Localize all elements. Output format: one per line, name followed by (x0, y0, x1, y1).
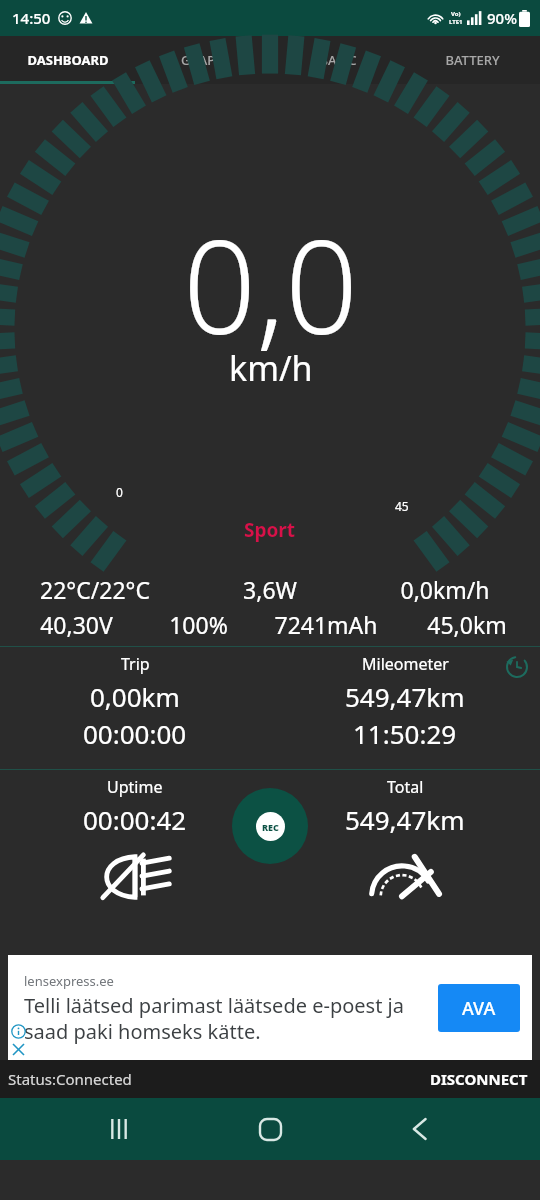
staticText: 45 (395, 498, 409, 514)
staticText: DASHBOARD (27, 51, 109, 69)
button[interactable]: Total (270, 770, 540, 945)
staticText: Vo) (451, 10, 461, 18)
staticText: 22°C/22°C (40, 574, 150, 605)
button[interactable]: Uptime (0, 770, 270, 945)
staticText: Trip (121, 653, 150, 675)
staticText: REC (262, 821, 279, 833)
staticText: 40,30V (40, 609, 113, 640)
staticText: 45,0km (427, 609, 507, 640)
staticText: 0,0km/h (400, 574, 490, 605)
button[interactable]: Trip (0, 647, 270, 769)
button[interactable]: Headlight off (96, 851, 174, 903)
staticText: GRAPH (181, 51, 225, 69)
button[interactable]: BASIC (270, 36, 405, 84)
staticText: 3,6W (243, 574, 297, 605)
button[interactable]: Close ad (9, 1040, 27, 1058)
button[interactable]: Ad info (9, 1022, 27, 1040)
staticText: lensexpress.ee (24, 972, 114, 990)
button[interactable]: Home (240, 1099, 300, 1159)
button[interactable]: Mileometer (270, 647, 540, 769)
staticText: km/h (229, 345, 313, 391)
staticText: Sport (244, 517, 296, 543)
button[interactable]: BATTERY (405, 36, 540, 84)
staticText: Mileometer (362, 653, 449, 675)
staticText: 00:00:42 (83, 802, 187, 837)
button[interactable]: AVA (438, 984, 520, 1032)
staticText: BATTERY (445, 51, 500, 69)
staticText: LTE1 (449, 18, 463, 26)
staticText: 7241mAh (274, 609, 378, 640)
staticText: Telli läätsed parimast läätsede e-poest … (24, 992, 438, 1044)
button[interactable]: DASHBOARD (0, 36, 135, 84)
staticText: 100% (169, 609, 228, 640)
button[interactable]: History (502, 652, 532, 682)
button[interactable]: Back (390, 1099, 450, 1159)
button[interactable]: Record (232, 788, 308, 864)
button[interactable]: DISCONNECT (426, 1065, 532, 1093)
button[interactable]: GRAPH (135, 36, 270, 84)
staticText: 549,47km (345, 679, 465, 714)
staticText: 90% (487, 8, 517, 28)
staticText: 0,0 (183, 197, 358, 371)
button[interactable]: lensexpress.ee (8, 955, 532, 1060)
staticText: AVA (462, 996, 496, 1021)
staticText: 549,47km (345, 802, 465, 837)
staticText: Status:Connected (8, 1069, 132, 1089)
staticText: DISCONNECT (430, 1069, 528, 1089)
staticText: 0,00km (90, 679, 180, 714)
staticText: 11:50:29 (353, 716, 457, 751)
staticText: Total (387, 776, 424, 798)
staticText: 14:50 (12, 8, 51, 28)
button[interactable]: Recent apps (90, 1099, 150, 1159)
staticText: 0 (116, 484, 123, 500)
button[interactable]: Cruise control off (362, 851, 448, 903)
staticText: Uptime (107, 776, 163, 798)
staticText: BASIC (319, 51, 357, 69)
staticText: 00:00:00 (83, 716, 187, 751)
